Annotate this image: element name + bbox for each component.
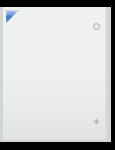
button[interactable]: Status <box>93 23 100 30</box>
button[interactable]: Send <box>0 7 111 142</box>
button[interactable]: Send <box>5 9 20 23</box>
button[interactable]: More <box>93 118 100 125</box>
